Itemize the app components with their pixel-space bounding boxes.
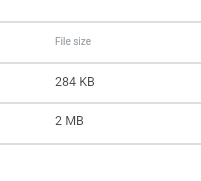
staticText: 2 MB [55, 113, 84, 128]
staticText: 284 KB [55, 74, 95, 89]
button[interactable]: 2 MB [0, 104, 201, 143]
button[interactable]: File size [0, 23, 201, 62]
button[interactable]: 284 KB [0, 64, 201, 102]
staticText: File size [55, 36, 91, 48]
